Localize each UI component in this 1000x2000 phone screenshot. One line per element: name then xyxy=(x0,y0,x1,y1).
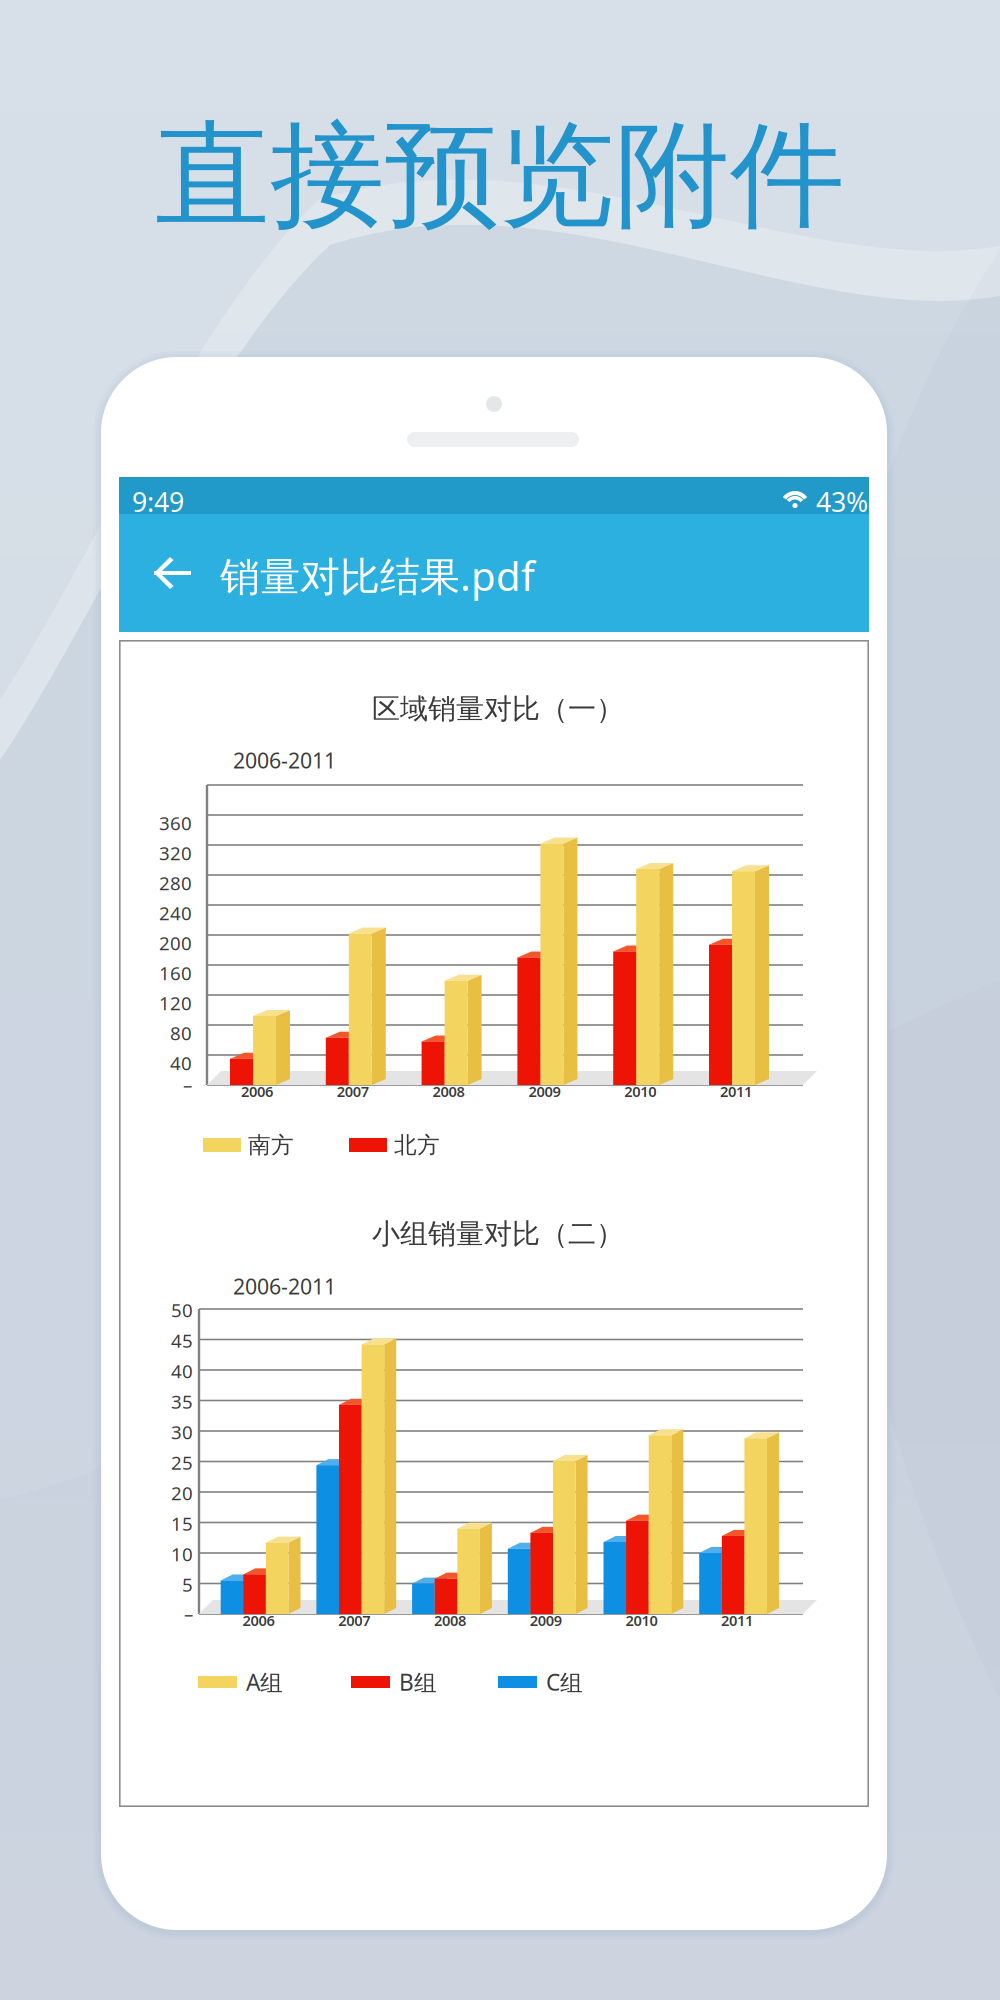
staticText: 9:49 xyxy=(132,484,184,519)
staticText: 43% xyxy=(816,484,868,519)
staticText: 2006-2011 xyxy=(233,746,336,774)
staticText: 2006 xyxy=(243,1610,275,1630)
staticText: 2006 xyxy=(241,1081,273,1101)
staticText: 200 xyxy=(159,931,192,955)
staticText: 80 xyxy=(170,1021,192,1045)
staticText: 2011 xyxy=(721,1610,753,1630)
staticText: 2010 xyxy=(625,1610,657,1630)
staticText: C组 xyxy=(546,1667,583,1697)
staticText: 35 xyxy=(171,1389,193,1414)
staticText: 45 xyxy=(171,1328,193,1353)
staticText: 240 xyxy=(159,901,192,925)
staticText: 南方 xyxy=(248,1131,294,1159)
staticText: 10 xyxy=(171,1542,193,1566)
staticText: 2011 xyxy=(720,1081,752,1101)
staticText: 北方 xyxy=(394,1131,440,1159)
staticText: 2007 xyxy=(337,1081,369,1101)
staticText: 280 xyxy=(159,871,192,895)
staticText: 160 xyxy=(159,961,192,985)
staticText: 小组销量对比（二） xyxy=(372,1217,624,1251)
staticText: 40 xyxy=(171,1359,193,1383)
staticText: 2008 xyxy=(434,1610,466,1630)
staticText: 120 xyxy=(159,991,192,1015)
staticText: 直接预览附件 xyxy=(155,106,845,246)
staticText: 25 xyxy=(171,1450,193,1475)
staticText: 20 xyxy=(171,1481,193,1505)
staticText: 320 xyxy=(159,841,192,865)
staticText: 区域销量对比（一） xyxy=(372,692,624,726)
staticText: 40 xyxy=(170,1051,192,1075)
staticText: B组 xyxy=(399,1667,437,1697)
staticText: 2006-2011 xyxy=(233,1272,336,1300)
staticText: – xyxy=(183,1073,192,1097)
staticText: 15 xyxy=(171,1511,193,1536)
staticText: 50 xyxy=(171,1298,193,1322)
staticText: 2008 xyxy=(433,1081,465,1101)
staticText: 2009 xyxy=(530,1610,562,1630)
staticText: 2009 xyxy=(528,1081,560,1101)
staticText: 2010 xyxy=(624,1081,656,1101)
staticText: 360 xyxy=(159,811,192,835)
staticText: 30 xyxy=(171,1420,193,1444)
staticText: 5 xyxy=(182,1572,193,1597)
staticText: 销量对比结果.pdf xyxy=(220,549,535,602)
staticText: 2007 xyxy=(338,1610,370,1630)
staticText: – xyxy=(184,1602,193,1626)
staticText: A组 xyxy=(246,1667,283,1697)
button[interactable]: Back xyxy=(119,514,205,632)
